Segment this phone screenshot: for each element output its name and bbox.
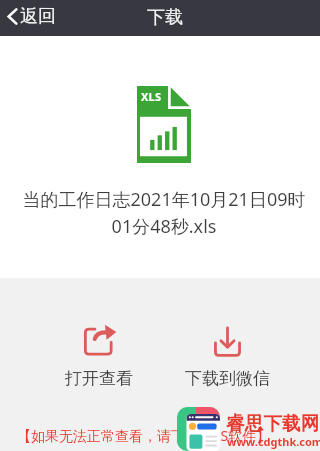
button[interactable]: 打开查看	[59, 320, 139, 393]
staticText: 打开查看	[65, 368, 133, 389]
button[interactable]: 返回	[0, 1, 66, 36]
staticText: 【如果无法正常查看，请下载WPS软件】	[17, 426, 271, 445]
staticText: 返回	[20, 5, 56, 28]
staticText: 睿思下载网	[226, 412, 320, 435]
staticText: 当的工作日志2021年10月21日09时01分48秒.xls	[22, 187, 306, 239]
staticText: www.cdgthk.com	[227, 434, 320, 449]
staticText: 下载到微信	[185, 368, 270, 389]
staticText: 下载	[147, 6, 183, 29]
staticText: XLS	[141, 89, 162, 104]
button[interactable]: 下载到微信	[179, 320, 276, 393]
